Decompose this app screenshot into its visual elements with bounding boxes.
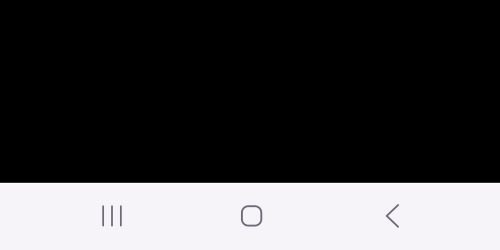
button[interactable]: Recent apps [69,190,155,242]
button[interactable]: Home [209,190,295,242]
button[interactable]: Back [349,190,435,242]
